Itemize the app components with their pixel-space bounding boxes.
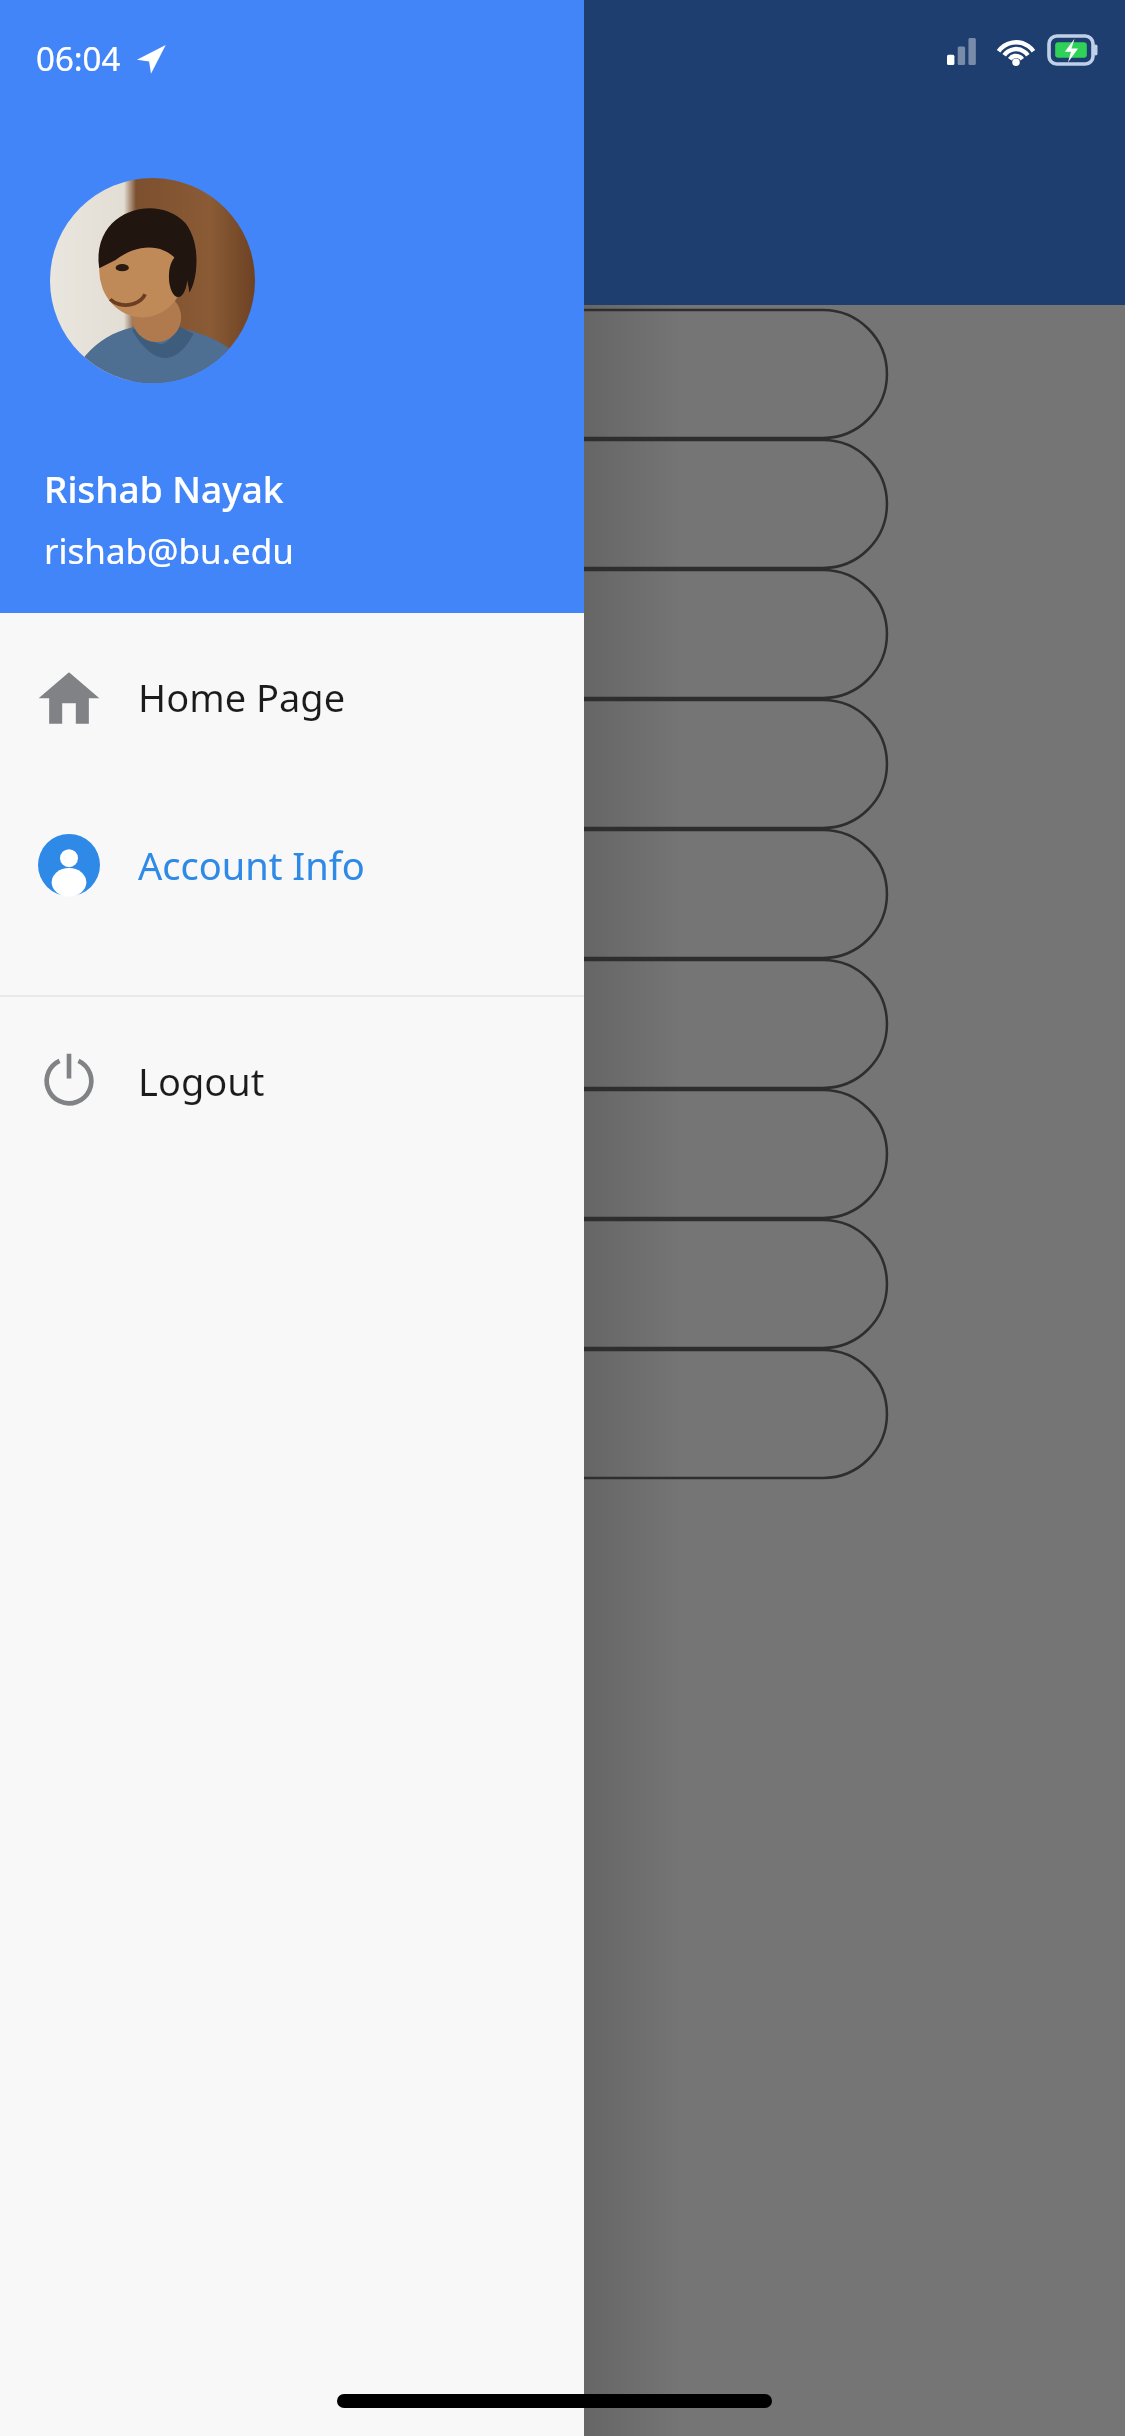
other: Account Info <box>38 834 100 896</box>
other: Home Page <box>38 666 100 728</box>
staticText: 06:04 <box>36 36 121 81</box>
button[interactable]: Home Page <box>0 613 584 781</box>
button[interactable]: Logout <box>0 997 584 1165</box>
button[interactable]: Account Info <box>0 781 584 949</box>
staticText: Logout <box>138 1055 265 1107</box>
staticText: Home Page <box>138 671 346 723</box>
other: Logout <box>38 1050 100 1112</box>
staticText: Rishab Nayak <box>44 463 284 513</box>
staticText: Account Info <box>138 839 365 891</box>
staticText: rishab@bu.edu <box>44 527 294 575</box>
